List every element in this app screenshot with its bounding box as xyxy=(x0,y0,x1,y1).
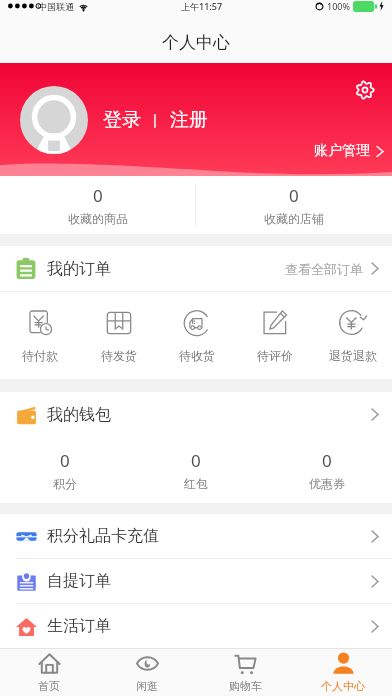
staticText: 丨 xyxy=(141,111,170,130)
button[interactable]: 待评价 xyxy=(236,300,314,371)
staticText: 登录 xyxy=(103,108,141,132)
button[interactable]: Avatar xyxy=(20,86,88,154)
staticText: 优惠券 xyxy=(309,476,345,491)
staticText: 100% xyxy=(327,0,350,12)
staticText: 0 xyxy=(93,184,103,207)
staticText: 0 xyxy=(60,449,70,472)
staticText: 0 xyxy=(322,449,332,472)
button[interactable]: Settings xyxy=(354,79,376,101)
staticText: 查看全部订单 xyxy=(285,261,363,277)
staticText: 待评价 xyxy=(257,348,293,363)
button[interactable]: 我的订单 xyxy=(0,246,392,291)
staticText: 收藏的商品 xyxy=(68,211,128,226)
staticText: 生活订单 xyxy=(47,616,111,636)
button[interactable]: 首页 xyxy=(0,649,98,696)
button[interactable]: 0 xyxy=(196,178,392,232)
button[interactable]: 待付款 xyxy=(0,300,79,371)
staticText: 红包 xyxy=(184,476,208,491)
button[interactable]: 待发货 xyxy=(79,300,158,371)
staticText: 待发货 xyxy=(101,348,137,363)
staticText: 上午11:57 xyxy=(181,0,223,12)
button[interactable]: 登录 xyxy=(103,108,141,132)
button[interactable]: 生活订单 xyxy=(0,604,392,648)
staticText: 0 xyxy=(191,449,201,472)
button[interactable]: 0 xyxy=(0,443,130,497)
staticText: 积分 xyxy=(53,476,77,491)
staticText: 注册 xyxy=(170,108,208,132)
staticText: 个人中心 xyxy=(162,32,230,53)
button[interactable]: 我的钱包 xyxy=(0,392,392,437)
button[interactable]: 0 xyxy=(130,443,261,497)
staticText: 自提订单 xyxy=(47,571,111,591)
button[interactable]: 购物车 xyxy=(196,649,294,696)
button[interactable]: 个人中心 xyxy=(294,649,392,696)
button[interactable]: 0 xyxy=(0,178,195,232)
button[interactable]: 0 xyxy=(261,443,392,497)
staticText: 收藏的店铺 xyxy=(264,211,324,226)
staticText: 闲逛 xyxy=(136,679,158,693)
staticText: 积分礼品卡充值 xyxy=(47,526,159,546)
staticText: 账户管理 xyxy=(314,142,370,160)
button[interactable]: 退货退款 xyxy=(314,300,392,371)
staticText: 我的钱包 xyxy=(47,405,111,425)
button[interactable]: 积分礼品卡充值 xyxy=(0,514,392,558)
staticText: 待付款 xyxy=(22,348,58,363)
button[interactable]: 闲逛 xyxy=(98,649,196,696)
staticText: 退货退款 xyxy=(329,348,377,363)
button[interactable]: 账户管理 xyxy=(314,142,384,160)
staticText: 个人中心 xyxy=(321,679,365,693)
staticText: 首页 xyxy=(38,679,60,693)
button[interactable]: 待收货 xyxy=(158,300,236,371)
staticText: 0 xyxy=(289,184,299,207)
staticText: 购物车 xyxy=(229,679,262,693)
button[interactable]: 注册 xyxy=(170,108,208,132)
staticText: 我的订单 xyxy=(47,259,111,279)
staticText: 中国联通 xyxy=(38,1,74,12)
staticText: 待收货 xyxy=(179,348,215,363)
button[interactable]: 自提订单 xyxy=(0,559,392,603)
